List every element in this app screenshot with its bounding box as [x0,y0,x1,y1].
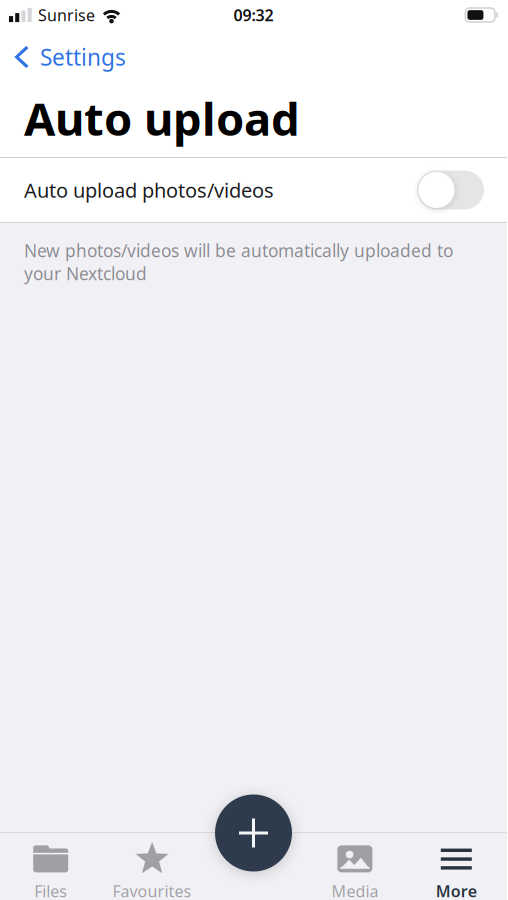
staticText: Sunrise [38,4,95,26]
button[interactable]: Create [208,788,298,878]
staticText: Media [331,880,378,900]
staticText: Files [34,880,67,900]
staticText: Auto upload photos/videos [24,177,274,203]
button[interactable]: More [406,832,507,900]
staticText: Settings [40,42,126,72]
button[interactable]: Favourites [101,832,203,900]
button[interactable]: Files [0,832,101,900]
staticText: More [436,880,477,900]
staticText: 09:32 [233,4,273,26]
button[interactable]: Settings [0,30,253,84]
staticText: Favourites [113,880,192,900]
button[interactable]: Media [304,832,406,900]
staticText: Auto upload [24,88,300,148]
staticText: New photos/videos will be automatically … [24,239,453,285]
